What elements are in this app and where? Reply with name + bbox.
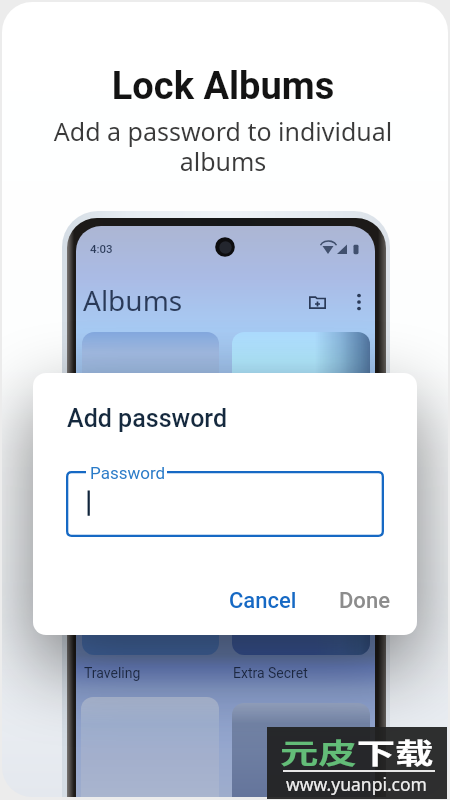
staticText: Password [90,463,166,483]
staticText: Traveling [84,665,141,681]
button[interactable]: Create album [298,283,336,321]
button[interactable] [331,573,393,615]
button[interactable] [81,697,219,797]
staticText: Lock Albums [2,64,446,109]
staticText: www.yuanpi.com [286,772,427,796]
button[interactable]: More options [340,283,375,321]
button[interactable] [222,573,300,615]
staticText: Extra Secret [233,665,308,681]
staticText: Add a password to individual [2,114,446,148]
button[interactable] [82,332,219,655]
staticText: Cancel [229,588,297,614]
button[interactable]: Password field [66,471,384,537]
button[interactable] [232,703,370,797]
staticText: 元皮下载 [280,732,435,773]
staticText: Done [339,588,390,614]
staticText: albums [2,144,446,178]
staticText: Albums [83,281,183,319]
staticText: 4:03 [90,242,113,255]
button[interactable] [232,332,370,655]
staticText: Add password [67,404,228,433]
